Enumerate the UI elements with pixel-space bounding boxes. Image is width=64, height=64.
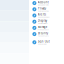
button[interactable]: Sign Out [29, 39, 64, 45]
staticText: Sounds, badges [38, 16, 50, 18]
staticText: Free up space [38, 29, 49, 31]
staticText: Theme options [38, 23, 48, 24]
staticText: Security [38, 31, 48, 35]
staticText: Storage [38, 25, 48, 29]
button[interactable]: Display [29, 19, 64, 25]
staticText: Manage profile [38, 4, 49, 6]
staticText: Account [38, 0, 49, 4]
button[interactable]: Security [29, 31, 64, 37]
staticText: Alerts [38, 13, 46, 16]
staticText: Sign Out [38, 40, 50, 43]
button[interactable]: Alerts [29, 12, 64, 19]
staticText: Display [38, 19, 47, 22]
button[interactable]: Privacy [29, 6, 64, 12]
staticText: End session [38, 43, 47, 45]
button[interactable]: Account [29, 0, 64, 6]
staticText: Control sharing [38, 10, 49, 12]
button[interactable]: Storage [29, 25, 64, 31]
staticText: Privacy [38, 7, 46, 10]
